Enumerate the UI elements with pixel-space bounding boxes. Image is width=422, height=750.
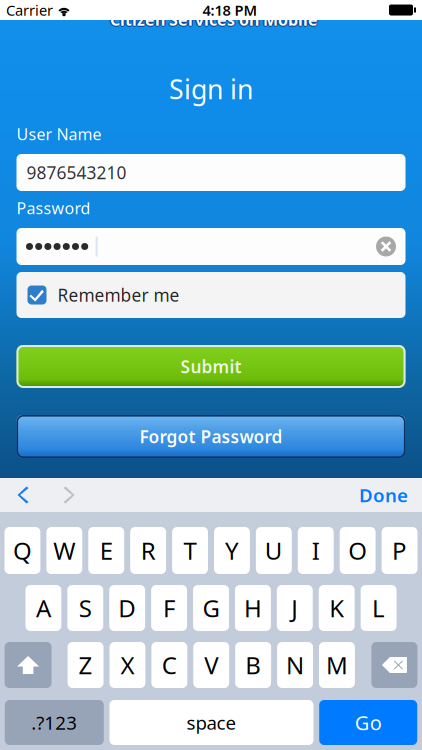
staticText: V: [204, 649, 218, 681]
staticText: 4:18 PM: [202, 0, 257, 20]
button[interactable]: Done: [345, 478, 422, 512]
button[interactable]: N: [277, 642, 313, 688]
staticText: Forgot Password: [139, 425, 282, 448]
staticText: A: [36, 592, 51, 624]
button[interactable]: V: [193, 642, 229, 688]
staticText: E: [100, 535, 113, 566]
staticText: space: [186, 710, 236, 735]
staticText: Done: [359, 483, 408, 507]
button[interactable]: S: [67, 585, 103, 631]
staticText: J: [291, 592, 298, 624]
staticText: Sign in: [169, 71, 253, 107]
staticText: Y: [225, 535, 239, 566]
staticText: T: [184, 535, 197, 566]
staticText: N: [286, 649, 304, 681]
staticText: I: [312, 535, 320, 566]
button[interactable]: P: [382, 527, 417, 574]
button[interactable]: O: [340, 527, 376, 574]
staticText: D: [118, 592, 136, 624]
staticText: Citizen Services on Mobile: [110, 10, 318, 31]
button[interactable]: M: [319, 642, 355, 688]
staticText: H: [244, 592, 262, 624]
button[interactable]: C: [151, 642, 187, 688]
button[interactable]: Delete: [371, 642, 417, 688]
button[interactable]: Y: [214, 527, 250, 574]
button[interactable]: .?123: [5, 700, 104, 745]
button[interactable]: T: [172, 527, 208, 574]
staticText: 9876543210: [26, 161, 126, 184]
button[interactable]: I: [298, 527, 334, 574]
staticText: W: [53, 535, 75, 566]
staticText: Q: [13, 535, 32, 566]
staticText: O: [348, 535, 367, 566]
button[interactable]: D: [109, 585, 145, 631]
staticText: F: [163, 592, 175, 624]
staticText: Citizen Services on Mobile: [111, 9, 319, 30]
staticText: .?123: [31, 710, 77, 735]
button[interactable]: Shift: [5, 642, 52, 688]
button[interactable]: B: [235, 642, 271, 688]
staticText: L: [372, 592, 385, 624]
button[interactable]: Z: [68, 642, 103, 688]
button[interactable]: X: [109, 642, 145, 688]
staticText: U: [265, 535, 283, 566]
button[interactable]: H: [235, 585, 271, 631]
button[interactable]: Submit: [16, 345, 405, 388]
staticText: P: [392, 535, 407, 566]
staticText: Citizen Services on Mobile: [110, 9, 318, 30]
staticText: X: [120, 649, 134, 681]
button[interactable]: W: [46, 527, 82, 574]
button[interactable]: K: [319, 585, 355, 631]
staticText: Password: [16, 197, 90, 219]
staticText: B: [245, 649, 261, 681]
staticText: Citizen Services on Mobile: [110, 8, 318, 29]
staticText: S: [79, 592, 92, 624]
staticText: K: [329, 592, 344, 624]
button[interactable]: Go: [319, 700, 417, 745]
button[interactable]: Remember me: [16, 272, 405, 318]
staticText: Z: [78, 649, 92, 681]
button[interactable]: R: [130, 527, 166, 574]
button[interactable]: L: [361, 585, 396, 631]
button[interactable]: E: [88, 527, 124, 574]
staticText: Submit: [180, 355, 241, 378]
button[interactable]: Q: [4, 527, 40, 574]
staticText: G: [202, 592, 219, 624]
button[interactable]: A: [25, 585, 61, 631]
button[interactable]: F: [151, 585, 187, 631]
staticText: Citizen Services on Mobile: [108, 9, 316, 30]
staticText: Remember me: [57, 283, 179, 306]
staticText: M: [326, 649, 348, 681]
button[interactable]: Forgot Password: [16, 415, 405, 458]
button[interactable]: Previous field: [0, 478, 46, 512]
button[interactable]: space: [109, 700, 313, 745]
staticText: C: [162, 649, 177, 681]
staticText: R: [141, 535, 156, 566]
staticText: User Name: [16, 123, 101, 145]
button[interactable]: U: [256, 527, 292, 574]
staticText: Go: [355, 709, 382, 736]
staticText: Carrier: [6, 0, 53, 20]
button[interactable]: Next field: [46, 478, 92, 512]
button[interactable]: G: [193, 585, 229, 631]
button[interactable]: J: [277, 585, 313, 631]
